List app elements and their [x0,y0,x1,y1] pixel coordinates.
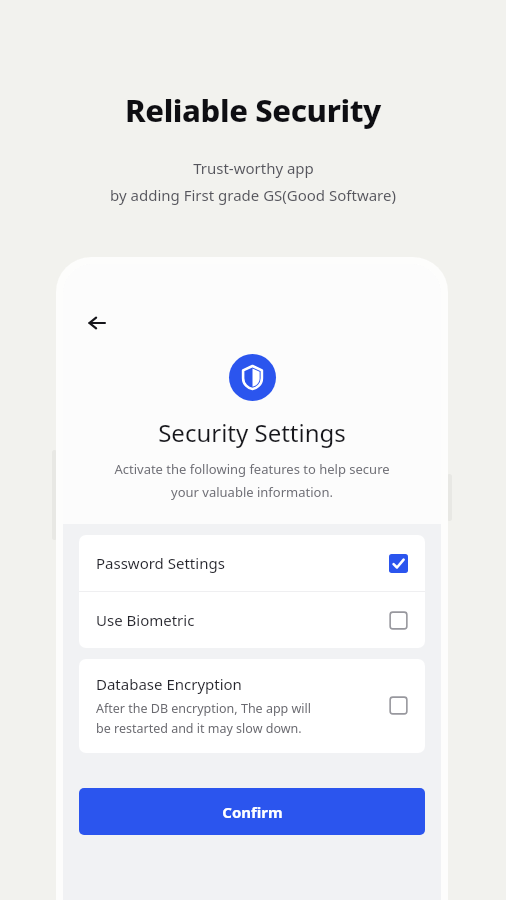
staticText: Security Settings [158,416,346,449]
button[interactable]: Confirm [79,788,425,835]
button[interactable]: Back [76,302,118,344]
staticText: Trust-worthy app [193,158,314,178]
staticText: Use Biometric [96,610,195,630]
button[interactable]: Database Encryption [79,659,425,753]
staticText: Activate the following features to help … [114,460,390,478]
staticText: Password Settings [96,553,225,573]
button[interactable]: Use Biometric [79,592,425,648]
staticText: Confirm [222,802,283,822]
staticText: your valuable information. [171,483,333,501]
button[interactable]: Password Settings [79,535,425,591]
staticText: Reliable Security [125,89,381,131]
staticText: by adding First grade GS(Good Software) [110,185,396,205]
staticText: After the DB encryption, The app will [96,700,312,717]
staticText: be restarted and it may slow down. [96,720,302,737]
staticText: Database Encryption [96,674,242,694]
